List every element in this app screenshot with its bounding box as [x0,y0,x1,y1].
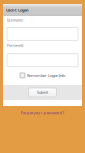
staticText: Client Logon [6,7,29,13]
button[interactable]: Submit [28,88,56,97]
staticText: Username: [7,18,24,22]
button[interactable]: Remember Logon Info [20,73,65,78]
staticText: Forgot your password? [20,110,64,115]
staticText: Password: [7,43,24,48]
staticText: Remember Logon Info [27,73,65,78]
button[interactable]: Forgot your password? [3,106,82,115]
staticText: Submit [37,90,48,95]
